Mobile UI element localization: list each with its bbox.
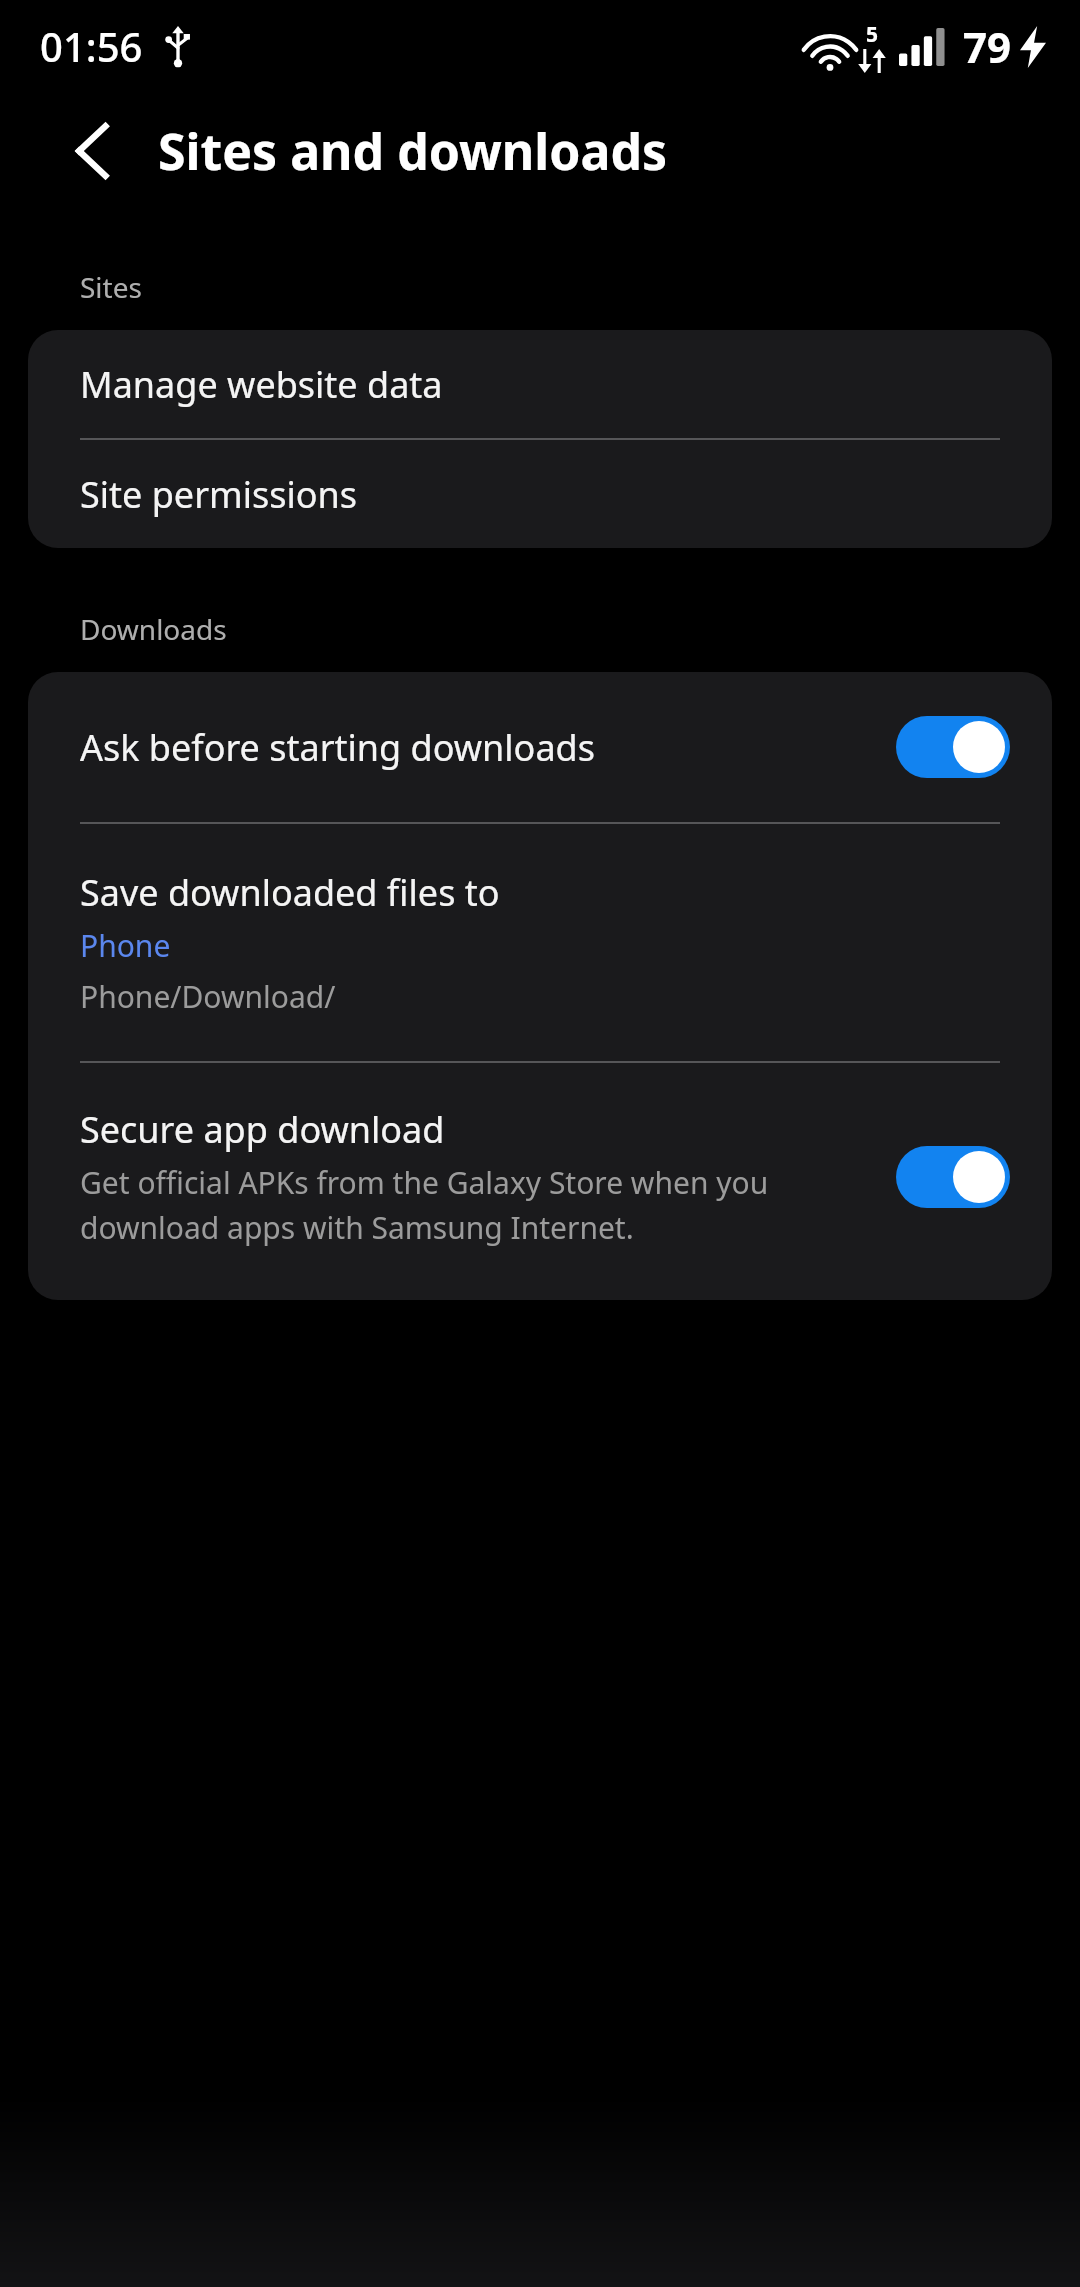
staticText: Phone/Download/ — [80, 976, 336, 1017]
staticText: 5 — [866, 20, 879, 49]
staticText: Downloads — [80, 610, 227, 648]
button[interactable]: Manage website data — [28, 330, 1052, 438]
staticText: Sites and downloads — [158, 117, 668, 185]
staticText: Save downloaded files to — [80, 868, 500, 917]
staticText: 01:56 — [40, 19, 143, 73]
button[interactable]: Save downloaded files to — [28, 824, 1052, 1061]
staticText: Get official APKs from the Galaxy Store … — [80, 1162, 872, 1248]
button[interactable]: Secure app download — [28, 1063, 1052, 1300]
staticText: Manage website data — [80, 360, 443, 409]
staticText: Site permissions — [80, 470, 358, 519]
button[interactable]: Toggle on — [896, 716, 1010, 778]
staticText: Phone — [80, 925, 171, 966]
button[interactable]: Toggle on — [896, 1146, 1010, 1208]
button[interactable]: Ask before starting downloads — [28, 672, 1052, 822]
staticText: Sites — [80, 268, 142, 306]
staticText: Ask before starting downloads — [80, 723, 896, 772]
button[interactable]: Back — [44, 103, 140, 199]
button[interactable]: Site permissions — [28, 440, 1052, 548]
staticText: 79 — [963, 18, 1012, 75]
staticText: Secure app download — [80, 1105, 445, 1154]
